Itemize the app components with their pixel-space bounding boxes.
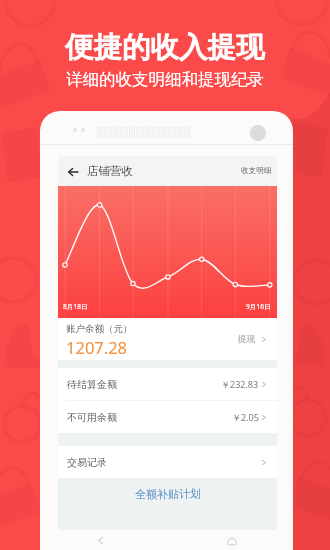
button[interactable]: 交易记录 [58, 446, 277, 478]
staticText: 提现 [238, 334, 255, 345]
staticText: 交易记录 [67, 456, 107, 469]
staticText: 9月16日 [246, 302, 271, 311]
button[interactable]: 全额补贴计划 [135, 487, 201, 501]
button[interactable]: Back [86, 530, 115, 550]
button[interactable]: 待结算金额 [58, 368, 277, 400]
button[interactable]: 不可用余额 [58, 401, 277, 433]
staticText: 店铺营收 [87, 164, 133, 178]
staticText: 便捷的收入提现 [65, 30, 265, 66]
staticText: 8月18日 [63, 302, 88, 311]
staticText: ￥232.83 [221, 378, 259, 390]
button[interactable]: 账户余额（元） [58, 318, 277, 360]
staticText: 待结算金额 [67, 378, 117, 391]
staticText: 账户余额（元） [66, 323, 133, 335]
button[interactable]: Back [65, 164, 80, 179]
staticText: 不可用余额 [67, 411, 117, 424]
staticText: ￥2.05 [232, 411, 259, 423]
staticText: 详细的收支明细和提现纪录 [66, 69, 264, 90]
button[interactable]: Home [217, 530, 246, 550]
staticText: 1207.28 [66, 336, 128, 358]
button[interactable]: 收支明细 [241, 166, 272, 176]
